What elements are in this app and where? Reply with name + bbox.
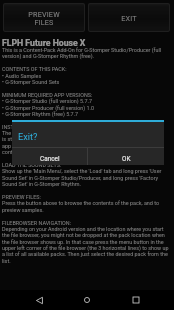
staticText: the file browser shows up. In that case …	[2, 239, 164, 245]
staticText: Cancel	[40, 155, 60, 163]
staticText: app can be removed from your device if y…	[2, 143, 149, 149]
staticText: is started for the very first time. Afte…	[2, 136, 148, 142]
staticText: • G-Stomper Rhythm (free) 5.7.7	[2, 111, 79, 117]
staticText: EXIT	[121, 14, 137, 22]
staticText: • Audio Samples	[2, 73, 42, 79]
staticText: • G-Stomper Producer (full version) 1.0	[2, 105, 94, 111]
staticText: FILES	[34, 18, 54, 26]
staticText: This is a Content-Pack Add-On for G-Stom…	[2, 47, 162, 53]
staticText: MINIMUM REQUIRED APP VERSIONS:	[2, 92, 93, 98]
staticText: Exit?	[18, 131, 38, 142]
staticText: Depending on your Android version and th…	[2, 226, 164, 232]
staticText: PREVIEW FILES:	[2, 194, 41, 200]
staticText: a list of all available packs. Then just…	[2, 251, 168, 257]
button[interactable]: Recent apps	[126, 290, 146, 310]
button[interactable]: Home	[77, 290, 97, 310]
staticText: Show up the 'Main Menu', select the 'Loa…	[2, 168, 162, 174]
staticText: Sound Set' in G-Stomper Rhythm.	[2, 181, 81, 187]
staticText: content remains untouched).	[2, 149, 71, 155]
staticText: LOAD THE SOUND SETS:	[2, 162, 62, 168]
staticText: • G-Stomper Sound Sets	[2, 79, 60, 85]
staticText: FLPH Future House X	[2, 38, 86, 48]
staticText: Sound Set' in G-Stomper Studio/Producer,…	[2, 175, 159, 181]
staticText: INSTALLATION:	[2, 124, 40, 130]
button[interactable]: PREVIEW	[3, 3, 85, 32]
staticText: OK	[122, 155, 131, 163]
button[interactable]: EXIT	[88, 3, 170, 32]
staticText: preview samples.	[2, 207, 44, 213]
staticText: CONTENTS OF THIS PACK:	[2, 66, 67, 72]
staticText: version) and G-Stomper Rhythm (free).	[2, 53, 94, 59]
staticText: the file browser, you might not be dropp…	[2, 232, 165, 238]
staticText: • G-Stomper Studio (full version) 5.7.7	[2, 98, 92, 104]
staticText: The pack installs itself automatically w…	[2, 130, 157, 136]
staticText: list.	[2, 258, 11, 264]
button[interactable]: OK	[88, 148, 164, 165]
button[interactable]: Back	[29, 290, 49, 310]
staticText: upper left corner of the file browser (t…	[2, 245, 169, 251]
staticText: Press the button above to browse the con…	[2, 200, 159, 206]
staticText: PREVIEW	[28, 10, 60, 18]
staticText: FILEBROWSER NAVIGATION:	[2, 220, 71, 226]
button[interactable]: Cancel	[12, 148, 87, 165]
